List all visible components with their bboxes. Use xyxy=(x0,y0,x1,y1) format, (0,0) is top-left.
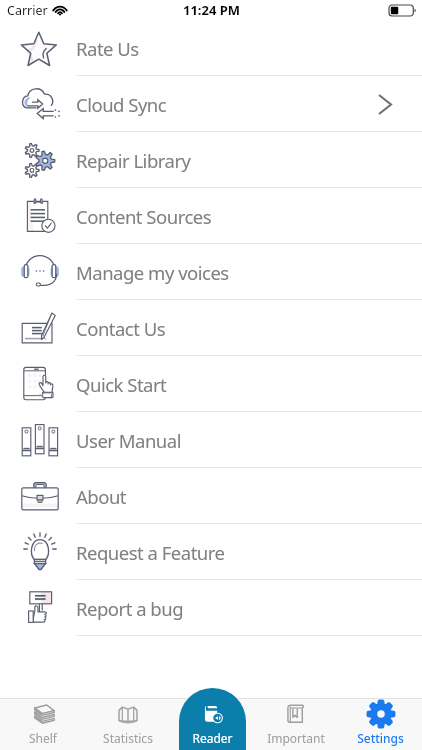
staticText: Manage my voices xyxy=(76,260,229,285)
staticText: Repair Library xyxy=(76,148,191,173)
staticText: Quick Start xyxy=(76,372,167,397)
staticText: Shelf xyxy=(29,730,57,746)
button[interactable]: User Manual xyxy=(0,412,422,468)
button[interactable]: About xyxy=(0,468,422,524)
other: Open Cloud Sync xyxy=(379,95,391,114)
staticText: Cloud Sync xyxy=(76,92,167,117)
staticText: Rate Us xyxy=(76,36,139,61)
staticText: Contact Us xyxy=(76,316,166,341)
staticText: 11:24 PM xyxy=(183,1,241,19)
button[interactable]: Important xyxy=(254,688,338,750)
button[interactable]: Rate Us xyxy=(0,20,422,76)
button[interactable]: Shelf xyxy=(0,688,85,750)
button[interactable]: Cloud Sync xyxy=(0,76,422,132)
button[interactable]: Repair Library xyxy=(0,132,422,188)
staticText: Content Sources xyxy=(76,204,212,229)
staticText: Settings xyxy=(357,730,404,746)
button[interactable]: Report a bug xyxy=(0,580,422,636)
staticText: About xyxy=(76,484,127,509)
button[interactable]: Statistics xyxy=(85,688,170,750)
button[interactable]: Settings xyxy=(338,688,422,750)
staticText: Statistics xyxy=(103,730,153,746)
staticText: Carrier xyxy=(7,2,48,19)
button[interactable]: Contact Us xyxy=(0,300,422,356)
staticText: Request a Feature xyxy=(76,540,225,565)
button[interactable]: Content Sources xyxy=(0,188,422,244)
staticText: Report a bug xyxy=(76,596,184,621)
staticText: User Manual xyxy=(76,428,181,453)
staticText: Important xyxy=(267,730,325,746)
staticText: Reader xyxy=(192,730,233,746)
button[interactable]: Quick Start xyxy=(0,356,422,412)
button[interactable]: Manage my voices xyxy=(0,244,422,300)
button[interactable]: Request a Feature xyxy=(0,524,422,580)
button[interactable]: Reader xyxy=(170,688,254,750)
